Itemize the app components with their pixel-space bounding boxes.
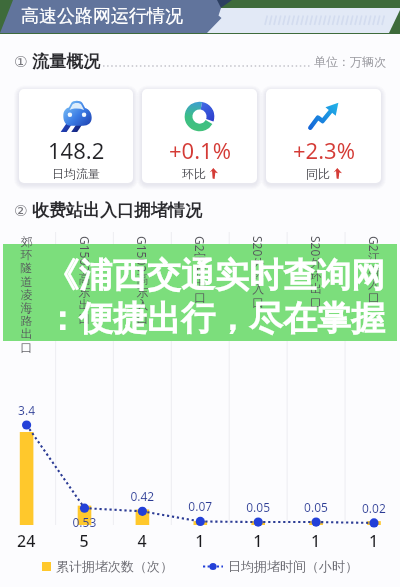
staticText: 流量概况 (32, 51, 100, 72)
staticText: ：便捷出行，尽在掌握 (45, 297, 385, 340)
staticText: 环比 (182, 166, 206, 181)
button[interactable]: 累计拥堵次数（次） (0, 228, 400, 587)
button[interactable]: +2.3% (266, 89, 381, 183)
staticText: 同比 (306, 166, 330, 181)
staticText: 日均拥堵时间（小时） (228, 558, 358, 574)
staticText: 《浦西交通实时查询网 (45, 254, 385, 297)
staticText: 累计拥堵次数（次） (56, 558, 173, 574)
button[interactable]: 148.2 (19, 89, 133, 183)
staticText: ① (14, 53, 28, 70)
staticText: 收费站出入口拥堵情况 (32, 200, 202, 221)
staticText: +2.3% (293, 135, 355, 165)
staticText: 148.2 (48, 135, 105, 165)
button[interactable]: +0.1% (142, 89, 257, 183)
staticText: 单位：万辆次 (314, 54, 386, 69)
staticText: 日均流量 (52, 166, 100, 181)
staticText: ② (14, 202, 28, 219)
staticText: 高速公路网运行情况 (21, 5, 183, 28)
staticText: +0.1% (169, 135, 231, 165)
